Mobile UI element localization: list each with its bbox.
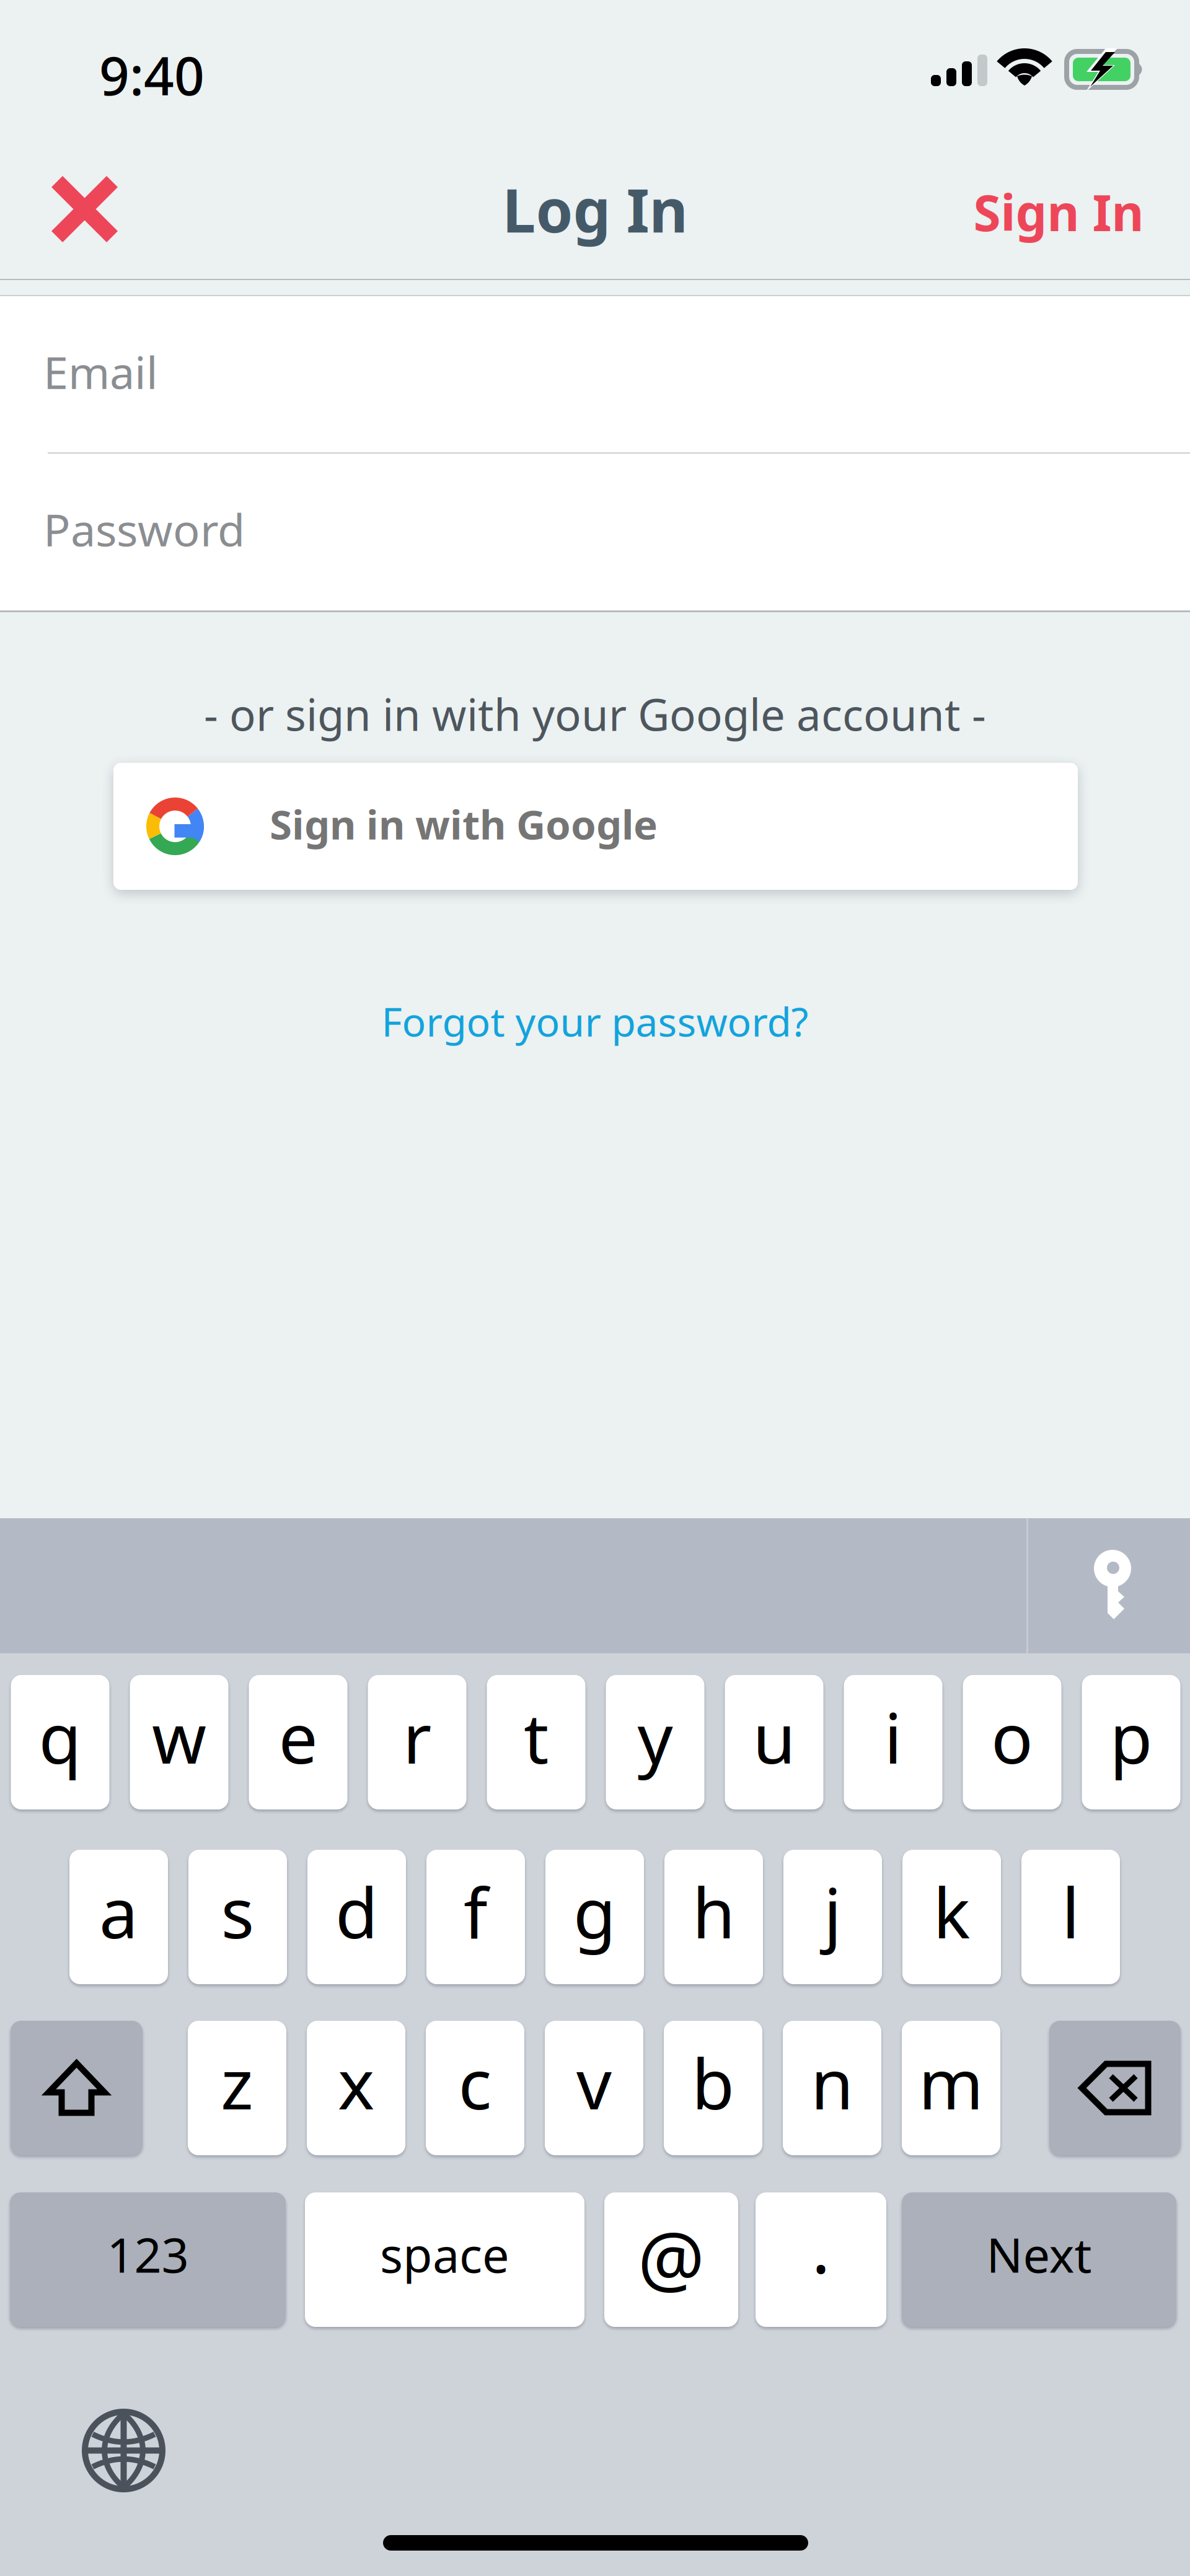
button[interactable]: Next keyboard (71, 2398, 178, 2505)
staticText: Log In (502, 170, 688, 249)
button[interactable]: u (725, 1675, 823, 1809)
staticText: Password (43, 499, 245, 559)
staticText: t (524, 1691, 549, 1783)
staticText: d (335, 1865, 378, 1957)
button[interactable]: k (902, 1850, 1001, 1984)
button[interactable]: l (1021, 1850, 1120, 1984)
staticText: z (221, 2036, 253, 2128)
staticText: space (380, 2222, 509, 2286)
button[interactable]: . (756, 2192, 886, 2327)
button[interactable]: b (664, 2021, 762, 2155)
button[interactable]: j (783, 1850, 882, 1984)
staticText: h (692, 1865, 735, 1957)
staticText: e (279, 1691, 318, 1783)
button[interactable]: d (307, 1850, 406, 1984)
button[interactable]: space (305, 2192, 584, 2327)
button[interactable]: v (545, 2021, 643, 2155)
staticText: x (338, 2036, 374, 2128)
staticText: y (637, 1691, 673, 1783)
staticText: o (991, 1691, 1033, 1783)
button[interactable]: Shift (11, 2021, 143, 2155)
staticText: i (884, 1691, 902, 1783)
button[interactable]: e (249, 1675, 347, 1809)
button[interactable]: x (307, 2021, 405, 2155)
button[interactable]: @ (604, 2192, 738, 2327)
staticText: b (692, 2036, 734, 2128)
button[interactable]: p (1082, 1675, 1180, 1809)
button[interactable]: Passwords (1071, 1536, 1153, 1637)
button[interactable]: h (664, 1850, 763, 1984)
staticText: v (576, 2036, 612, 2128)
staticText: Next (986, 2222, 1092, 2286)
staticText: c (458, 2036, 492, 2128)
staticText: 123 (107, 2222, 189, 2286)
staticText: m (919, 2036, 984, 2128)
button[interactable]: w (130, 1675, 228, 1809)
button[interactable]: g (545, 1850, 644, 1984)
button[interactable]: o (963, 1675, 1061, 1809)
button[interactable]: a (69, 1850, 168, 1984)
staticText: @ (638, 2208, 705, 2307)
staticText: . (812, 2200, 830, 2292)
staticText: k (933, 1865, 970, 1957)
button[interactable]: 123 (10, 2192, 286, 2327)
button[interactable]: Close (37, 162, 131, 256)
staticText: q (39, 1691, 82, 1783)
staticText: 9:40 (99, 40, 205, 110)
button[interactable]: t (487, 1675, 585, 1809)
button[interactable]: i (844, 1675, 942, 1809)
staticText: - or sign in with your Google account - (204, 685, 986, 743)
button[interactable]: Sign In (935, 175, 1183, 249)
staticText: s (221, 1865, 254, 1957)
button[interactable]: f (426, 1850, 525, 1984)
staticText: p (1110, 1691, 1153, 1783)
staticText: Email (43, 342, 158, 401)
button[interactable]: Next (902, 2192, 1176, 2327)
staticText: n (811, 2036, 853, 2128)
button[interactable]: q (11, 1675, 109, 1809)
staticText: l (1062, 1865, 1080, 1957)
staticText: Sign in with Google (270, 797, 658, 851)
button[interactable]: m (902, 2021, 1000, 2155)
staticText: g (573, 1865, 616, 1957)
button[interactable]: Delete (1049, 2021, 1181, 2155)
button[interactable]: n (783, 2021, 881, 2155)
staticText: a (99, 1865, 138, 1957)
staticText: u (753, 1691, 796, 1783)
staticText: w (152, 1691, 206, 1783)
staticText: f (464, 1865, 488, 1957)
staticText: Forgot your password? (381, 995, 809, 1048)
staticText: r (403, 1691, 431, 1783)
button[interactable]: y (606, 1675, 704, 1809)
button[interactable]: c (426, 2021, 524, 2155)
button[interactable]: Sign in with Google (113, 763, 1078, 890)
button[interactable]: Forgot your password? (0, 990, 1190, 1052)
button[interactable]: z (188, 2021, 286, 2155)
button[interactable]: r (368, 1675, 466, 1809)
staticText: Sign In (973, 179, 1144, 245)
button[interactable]: s (188, 1850, 287, 1984)
staticText: j (824, 1865, 842, 1957)
